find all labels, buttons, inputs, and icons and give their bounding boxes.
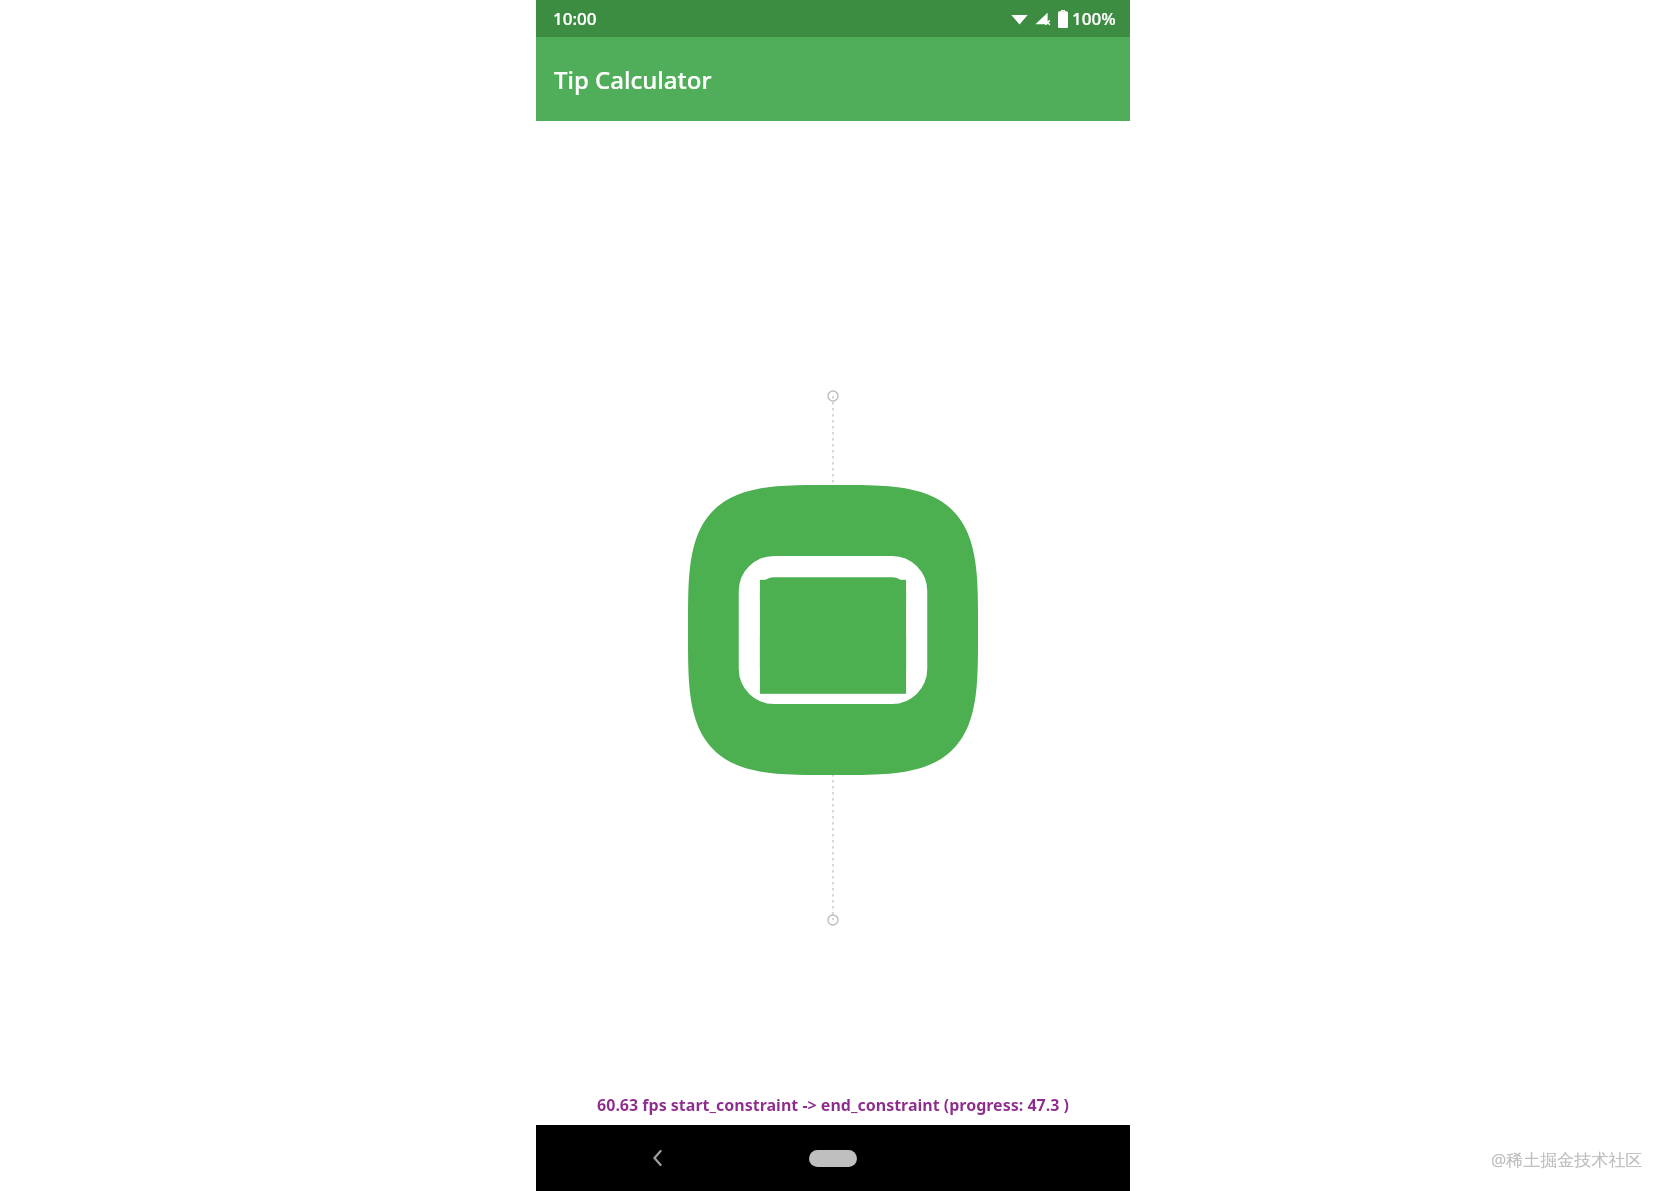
staticText: 100% bbox=[1072, 7, 1116, 30]
button[interactable]: App logo bbox=[688, 485, 978, 775]
button[interactable]: Back bbox=[636, 1136, 680, 1180]
staticText: @稀土掘金技术社区 bbox=[1491, 1148, 1643, 1171]
staticText: Tip Calculator bbox=[554, 63, 712, 96]
button[interactable]: Home bbox=[809, 1150, 857, 1167]
staticText: 10:00 bbox=[553, 7, 597, 30]
staticText: 60.63 fps start_constraint -> end_constr… bbox=[536, 1094, 1130, 1116]
